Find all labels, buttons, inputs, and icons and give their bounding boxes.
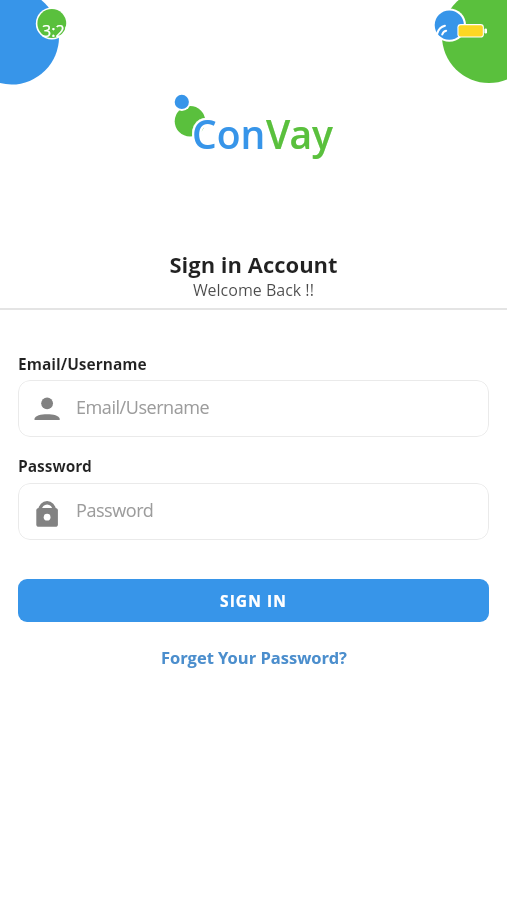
button[interactable]: Password: [18, 483, 489, 540]
staticText: Email/Username: [76, 395, 210, 420]
staticText: Con: [192, 107, 266, 160]
staticText: Sign in Account: [0, 249, 507, 279]
staticText: 3:29: [42, 20, 74, 42]
staticText: Email/Username: [18, 353, 147, 374]
staticText: Vay: [266, 107, 334, 160]
staticText: Password: [76, 498, 154, 523]
staticText: Vay: [266, 107, 334, 160]
staticText: Con: [192, 107, 266, 160]
button[interactable]: SIGN IN: [18, 579, 489, 622]
staticText: Welcome Back !!: [0, 279, 507, 301]
staticText: SIGN IN: [220, 590, 287, 611]
button[interactable]: Email/Username: [18, 380, 489, 437]
staticText: Password: [18, 455, 92, 476]
button[interactable]: Forget Your Password?: [157, 642, 351, 672]
